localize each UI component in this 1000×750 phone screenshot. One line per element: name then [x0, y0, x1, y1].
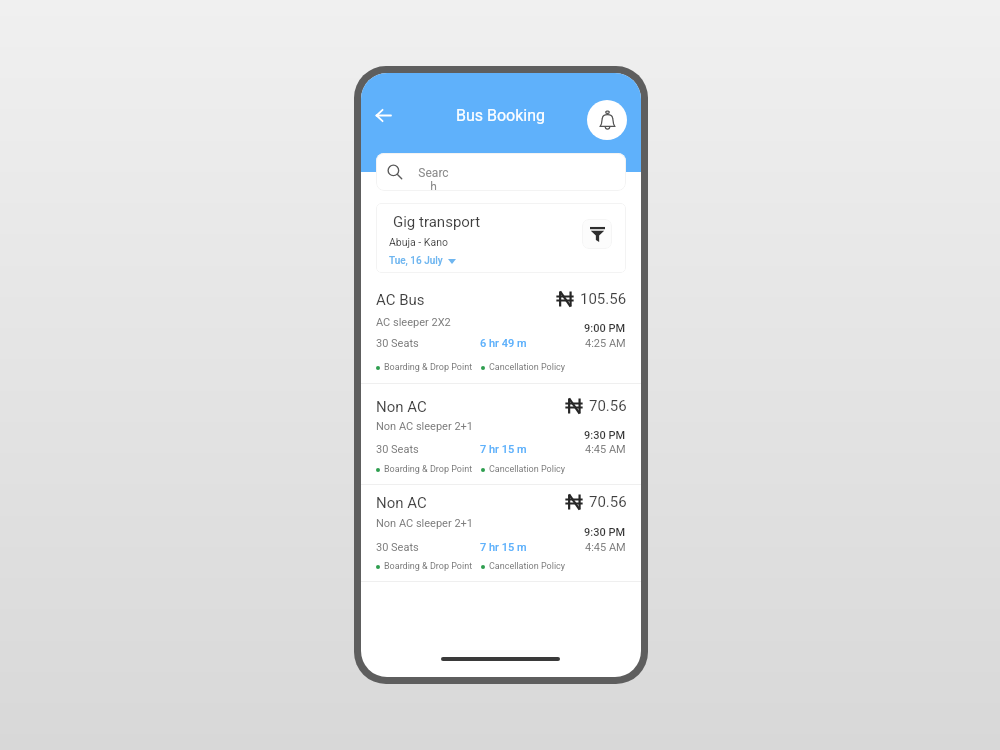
staticText: AC sleeper 2X2 [376, 316, 451, 329]
staticText: 4:25 AM [585, 337, 626, 350]
staticText: 70.56 [589, 493, 627, 511]
staticText: Boarding & Drop Point [384, 464, 473, 475]
staticText: Boarding & Drop Point [384, 561, 473, 572]
button[interactable]: AC Bus [361, 283, 641, 383]
staticText: Tue, 16 July [389, 255, 443, 267]
staticText: 7 hr 15 m [480, 443, 527, 456]
staticText: Non AC [376, 398, 427, 416]
staticText: 70.56 [589, 397, 627, 415]
staticText: 9:30 PM [584, 429, 626, 442]
staticText: Non AC sleeper 2+1 [376, 517, 474, 530]
button[interactable]: Filter [582, 219, 612, 249]
staticText: Boarding & Drop Point [384, 362, 473, 373]
staticText: 4:45 AM [585, 541, 626, 554]
staticText: Search [418, 166, 449, 191]
staticText: 30 Seats [376, 337, 419, 350]
staticText: 7 hr 15 m [480, 541, 527, 554]
staticText: Bus Booking [456, 106, 546, 125]
staticText: 105.56 [580, 290, 627, 308]
button[interactable]: Non AC [361, 384, 641, 485]
staticText: 30 Seats [376, 443, 419, 456]
button[interactable]: Back [368, 100, 398, 130]
staticText: 4:45 AM [585, 443, 626, 456]
staticText: 30 Seats [376, 541, 419, 554]
staticText: Non AC [376, 494, 427, 512]
staticText: Abuja - Kano [389, 236, 448, 248]
staticText: 6 hr 49 m [480, 337, 527, 350]
button[interactable]: Non AC [361, 485, 641, 581]
button[interactable]: Notifications [587, 100, 627, 140]
staticText: Cancellation Policy [489, 362, 566, 373]
staticText: Gig transport [393, 213, 481, 231]
staticText: Non AC sleeper 2+1 [376, 420, 474, 433]
staticText: Cancellation Policy [489, 464, 566, 475]
staticText: 9:30 PM [584, 526, 626, 539]
button[interactable]: Search [376, 153, 626, 191]
staticText: Cancellation Policy [489, 561, 566, 572]
staticText: AC Bus [376, 291, 425, 309]
staticText: 9:00 PM [584, 322, 626, 335]
button[interactable]: Gig transport [376, 203, 626, 273]
